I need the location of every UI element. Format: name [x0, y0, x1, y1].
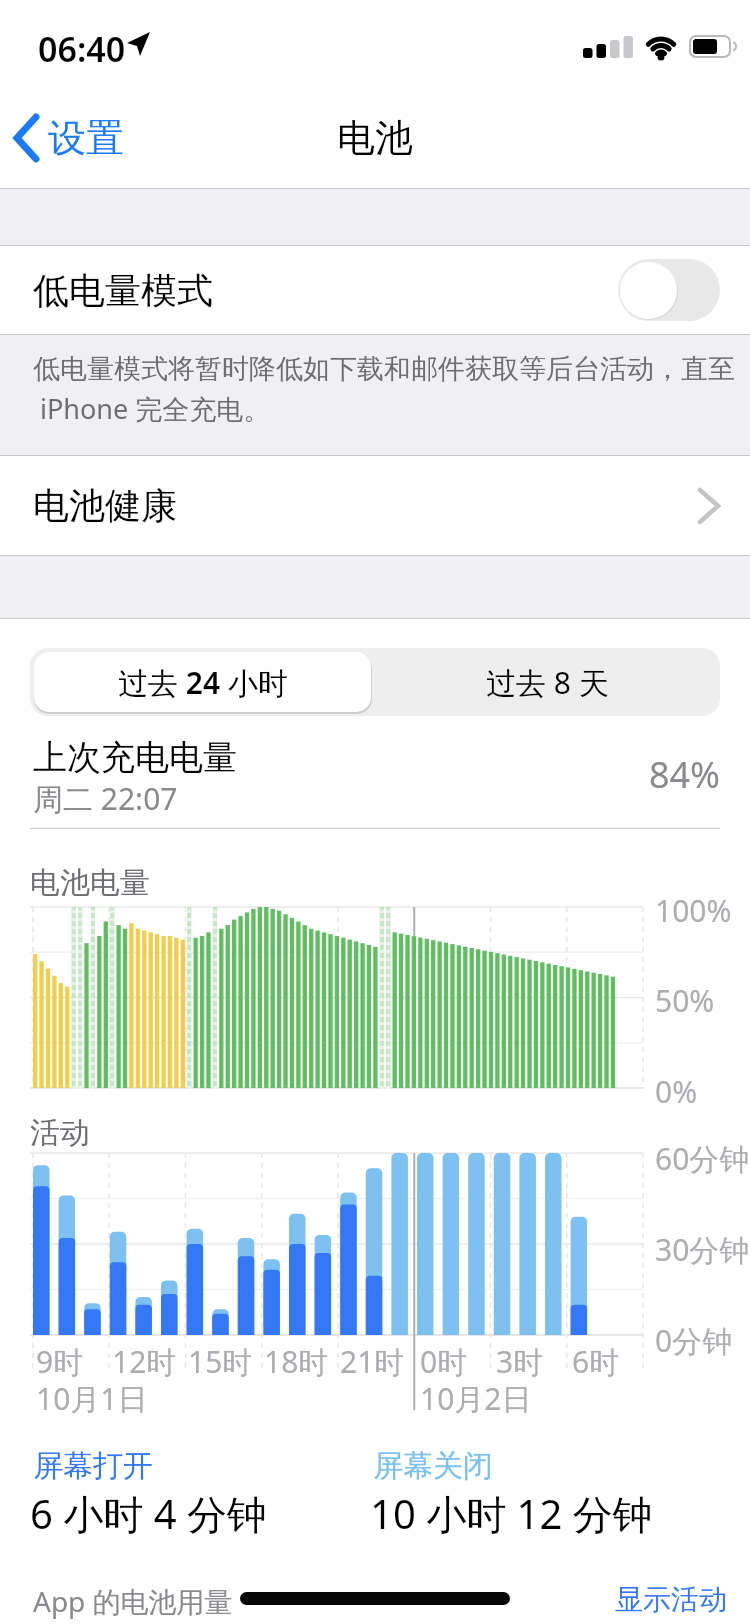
staticText: 显示活动 [615, 1582, 727, 1617]
staticText: 12时 [112, 1341, 177, 1382]
button[interactable]: 电池健康 [0, 456, 750, 555]
staticText: 过去 8 天 [486, 662, 609, 703]
button[interactable]: 显示活动 [615, 1582, 727, 1617]
staticText: 06:40 [38, 26, 126, 72]
staticText: 上次充电电量 [33, 736, 237, 779]
staticText: 30分钟 [655, 1229, 750, 1270]
staticText: 10月2日 [420, 1378, 532, 1419]
staticText: 0% [655, 1071, 698, 1112]
staticText: 活动 [30, 1114, 90, 1152]
button[interactable]: 低电量模式 [0, 246, 750, 334]
staticText: 21时 [340, 1341, 405, 1382]
staticText: 60分钟 [655, 1138, 750, 1179]
staticText: 10月1日 [36, 1378, 148, 1419]
button[interactable]: 设置 [14, 114, 124, 162]
staticText: 15时 [188, 1341, 253, 1382]
staticText: 低电量模式 [33, 268, 213, 313]
staticText: 屏幕打开 [33, 1447, 153, 1485]
staticText: 设置 [48, 114, 124, 162]
staticText: 电池电量 [30, 864, 150, 902]
staticText: 18时 [264, 1341, 329, 1382]
staticText: 0分钟 [655, 1320, 733, 1361]
staticText: 0时 [420, 1341, 468, 1382]
staticText: 9时 [36, 1341, 84, 1382]
staticText: 6 小时 4 分钟 [30, 1486, 267, 1541]
button[interactable]: 屏幕打开 [33, 1447, 153, 1485]
staticText: 50% [655, 980, 715, 1021]
staticText: 100% [655, 890, 732, 931]
staticText: 84% [0, 750, 720, 799]
staticText: 3时 [496, 1341, 544, 1382]
staticText: 10 小时 12 分钟 [370, 1486, 653, 1541]
staticText: 周二 22:07 [33, 778, 178, 819]
staticText: 过去 24 小时 [118, 662, 288, 703]
staticText: 屏幕关闭 [373, 1447, 493, 1485]
button[interactable] [618, 259, 720, 321]
staticText: 电池 [337, 114, 413, 162]
staticText: App 的电池用量 [33, 1582, 233, 1620]
button[interactable]: 屏幕关闭 [373, 1447, 493, 1485]
staticText: 6时 [572, 1341, 620, 1382]
staticText: 低电量模式将暂时降低如下载和邮件获取等后台活动，直至 iPhone 完全充电。 [33, 352, 735, 427]
button[interactable]: 过去 24 小时 [34, 652, 371, 712]
button[interactable]: 过去 8 天 [375, 648, 720, 716]
staticText: 电池健康 [33, 483, 177, 528]
